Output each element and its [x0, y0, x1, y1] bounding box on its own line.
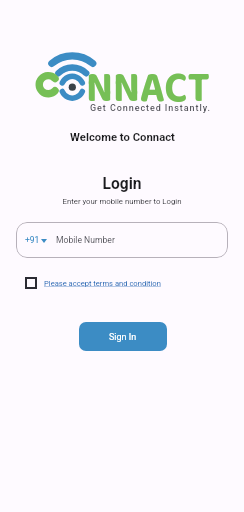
- staticText: +91: [25, 235, 40, 245]
- staticText: Login: [102, 175, 142, 193]
- staticText: NNACT: [86, 53, 210, 124]
- button[interactable]: Accept terms checkbox: [25, 277, 37, 289]
- button[interactable]: Please accept terms and condition: [44, 279, 161, 288]
- staticText: Sign In: [109, 332, 137, 343]
- button[interactable]: Sign In: [79, 322, 167, 351]
- staticText: Mobile Number: [56, 235, 115, 245]
- staticText: Welcome to Connact: [70, 131, 175, 144]
- button[interactable]: +91: [16, 222, 228, 258]
- staticText: Enter your mobile number to Login: [62, 197, 182, 206]
- staticText: Get Connected Instantly.: [90, 103, 211, 114]
